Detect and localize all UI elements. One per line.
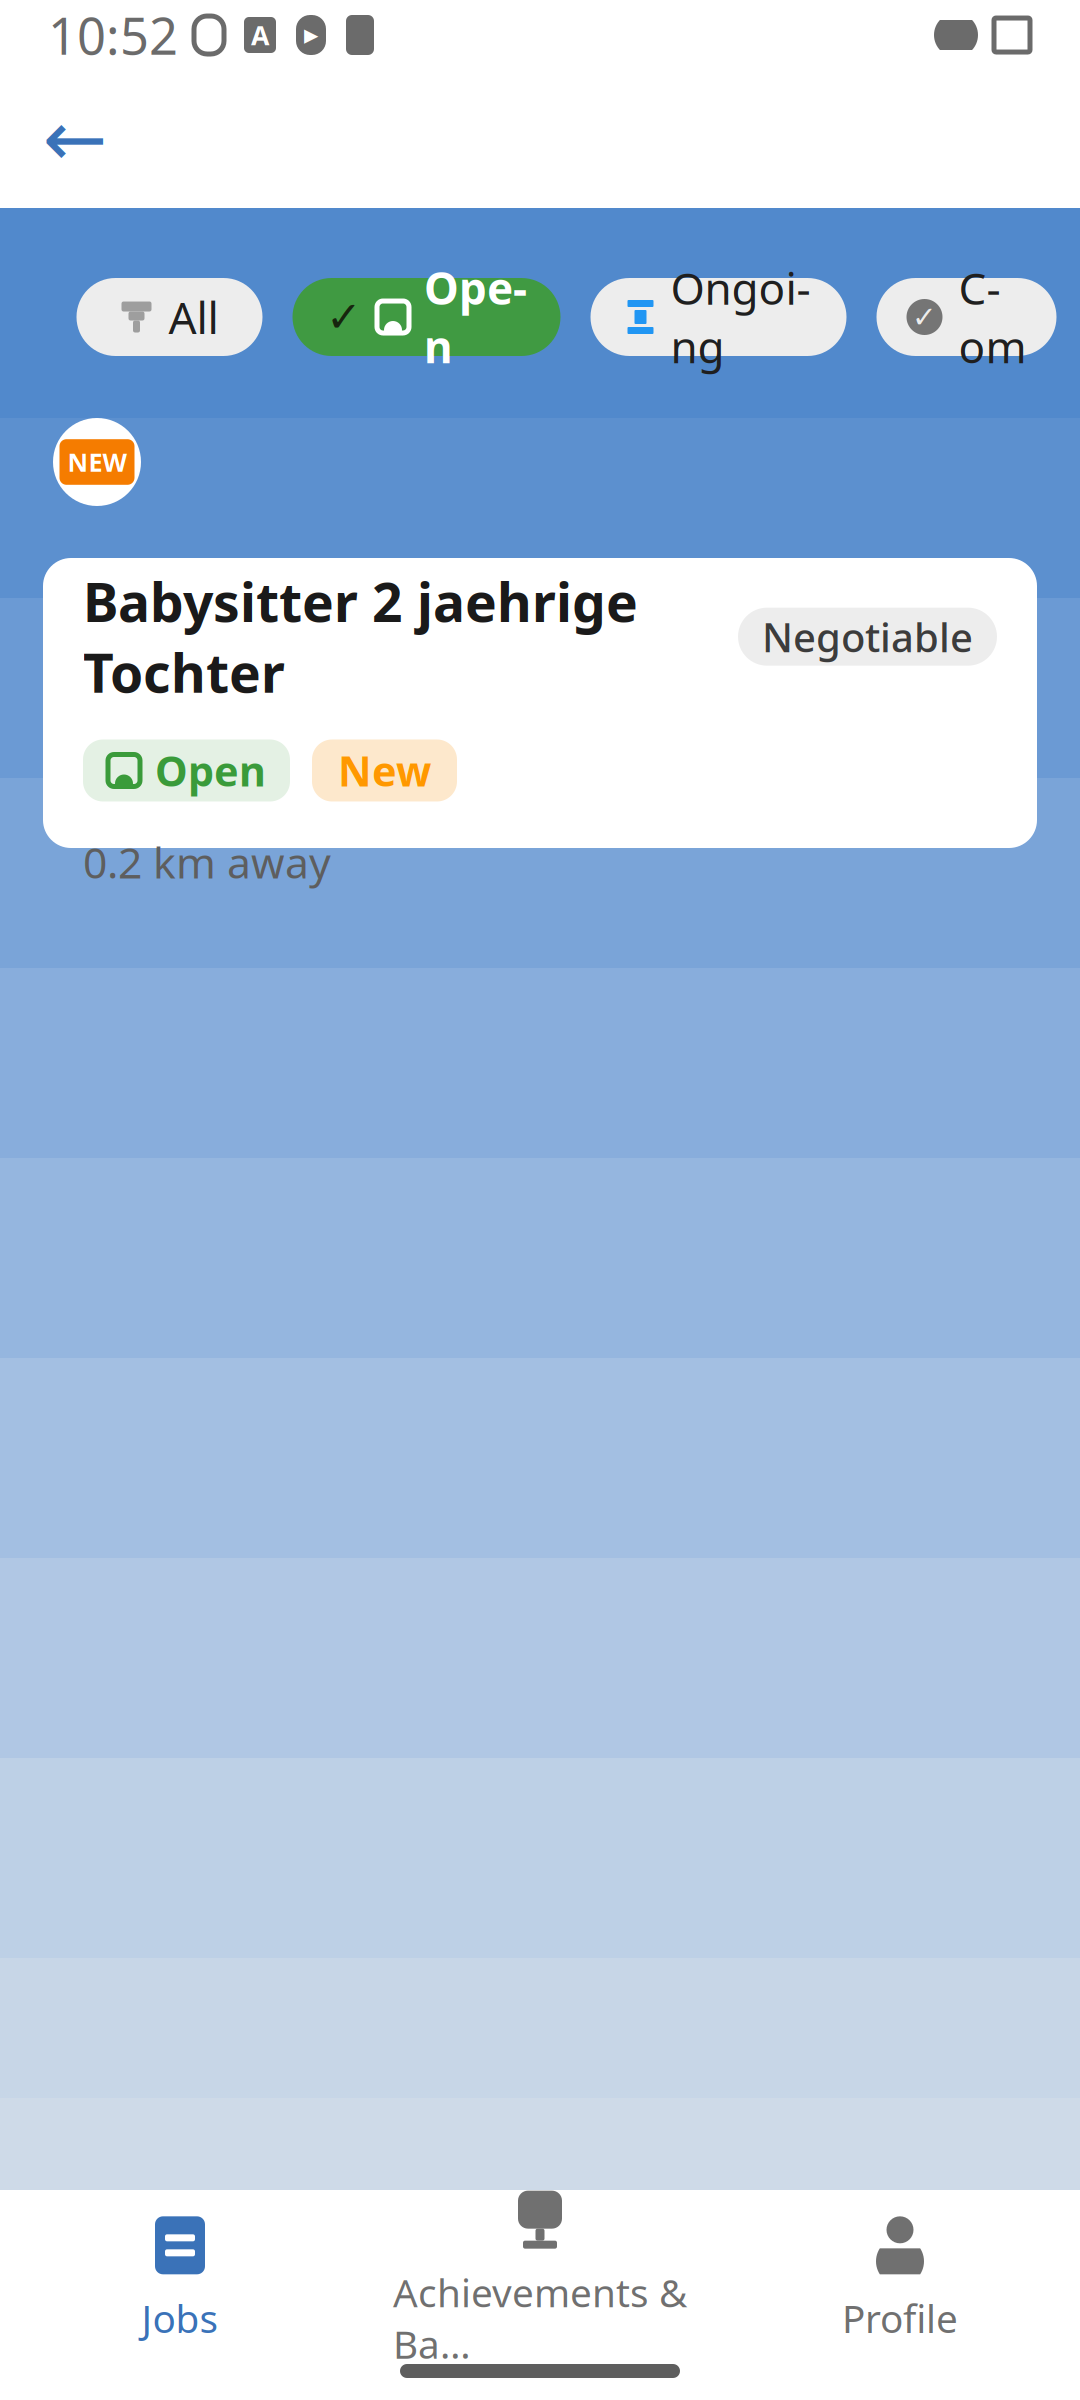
staticText: Babysitter 2 jaehrige Tochter <box>83 566 638 707</box>
button[interactable]: Jobs <box>0 2204 360 2354</box>
staticText: ✓ <box>326 293 362 341</box>
button[interactable]: All <box>76 278 262 356</box>
button[interactable]: ✓ <box>292 278 560 356</box>
staticText: All <box>168 288 218 346</box>
staticText: Achievements & Ba… <box>393 2267 687 2369</box>
staticText: Negotiable <box>762 610 973 663</box>
staticText: New <box>338 743 431 798</box>
button[interactable]: Achievements & Ba… <box>360 2204 720 2354</box>
button[interactable]: Back <box>20 84 130 194</box>
button[interactable]: Profile <box>720 2204 1080 2354</box>
staticText: ▶ <box>304 24 318 46</box>
staticText: 10:52 <box>48 1 178 69</box>
staticText: Com <box>958 259 1026 375</box>
button[interactable]: Babysitter 2 jaehrige Tochter <box>43 558 1037 848</box>
staticText: Ongoing <box>670 259 810 375</box>
staticText: ← <box>42 95 107 183</box>
staticText: Jobs <box>141 2292 218 2344</box>
staticText: NEW <box>67 445 126 479</box>
staticText: Profile <box>842 2292 958 2344</box>
staticText: ✓ <box>912 300 937 334</box>
staticText: Open <box>155 743 266 798</box>
staticText: Open <box>424 259 527 375</box>
staticText: A <box>251 17 269 53</box>
staticText: 0.2 km away <box>83 833 331 890</box>
button[interactable]: New jobs filter <box>53 418 141 506</box>
button[interactable]: ✓ <box>876 278 1056 356</box>
button[interactable]: Ongoing <box>590 278 846 356</box>
